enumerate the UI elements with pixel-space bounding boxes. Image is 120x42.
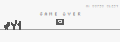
staticText: GAME OVER <box>40 11 80 16</box>
button[interactable]: Restart game <box>56 19 64 25</box>
staticText: HI 00750 01234 <box>86 4 118 8</box>
